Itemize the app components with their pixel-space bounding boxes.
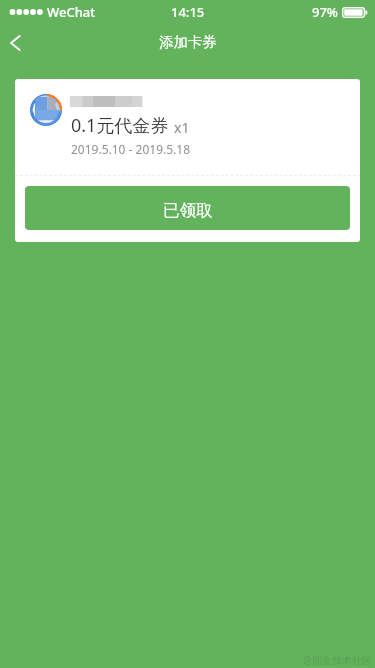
button[interactable]: 已领取 xyxy=(25,186,350,230)
staticText: 2019.5.10 - 2019.5.18 xyxy=(71,141,191,157)
staticText: @掘金技术社区 xyxy=(303,653,372,667)
staticText: 14:15 xyxy=(171,3,205,21)
staticText: x1 xyxy=(174,118,190,137)
button[interactable]: Back xyxy=(0,24,36,68)
staticText: 97% xyxy=(312,3,338,21)
staticText: 添加卡券 xyxy=(159,33,217,51)
staticText: 0.1元代金券 xyxy=(71,113,169,138)
staticText: WeChat xyxy=(47,3,96,21)
staticText: 已领取 xyxy=(163,200,213,221)
